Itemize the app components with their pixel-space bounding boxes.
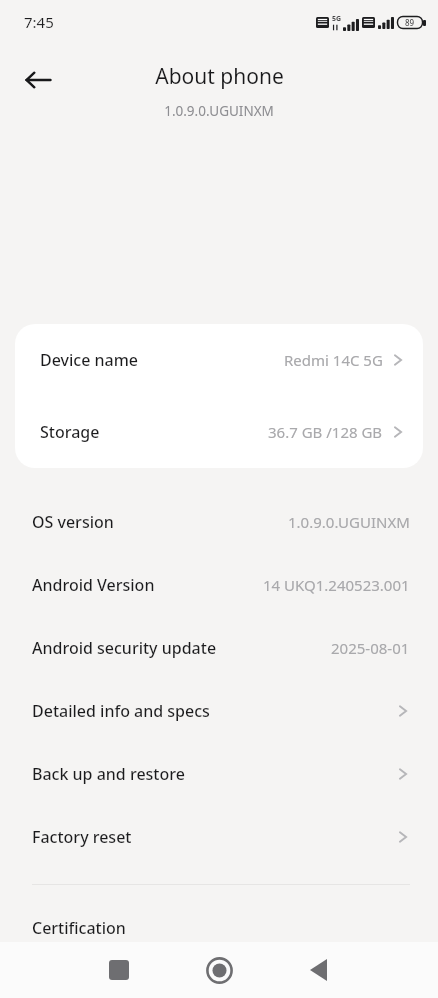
staticText: 1.0.9.0.UGUINXM (288, 512, 410, 532)
button[interactable]: Back (14, 56, 62, 104)
staticText: Storage (40, 421, 100, 443)
staticText: About phone (155, 62, 284, 91)
staticText: 36.7 GB /128 GB (268, 422, 383, 442)
staticText: Android Version (32, 574, 155, 596)
staticText: OS version (32, 511, 114, 533)
button[interactable]: Back (294, 946, 342, 994)
staticText: 89 (405, 17, 415, 28)
staticText: 2025-08-01 (331, 638, 410, 658)
staticText: 5G (332, 14, 342, 24)
staticText: 1.0.9.0.UGUINXM (164, 102, 274, 120)
staticText: Factory reset (32, 826, 132, 848)
button[interactable]: Factory reset (0, 805, 438, 868)
staticText: Android security update (32, 637, 217, 659)
button[interactable]: Device name (15, 324, 423, 396)
button[interactable]: Storage (15, 396, 423, 468)
staticText: Redmi 14C 5G (284, 350, 383, 370)
button[interactable]: Android security update (0, 616, 438, 679)
staticText: Certification (32, 917, 126, 939)
staticText: Back up and restore (32, 763, 185, 785)
button[interactable]: Back up and restore (0, 742, 438, 805)
staticText: Device name (40, 349, 139, 371)
staticText: 14 UKQ1.240523.001 (263, 575, 410, 595)
button[interactable]: OS version (0, 490, 438, 553)
staticText: Detailed info and specs (32, 700, 210, 722)
button[interactable]: Detailed info and specs (0, 679, 438, 742)
button[interactable]: Recent apps (95, 946, 143, 994)
button[interactable]: Home (195, 946, 243, 994)
staticText: 7:45 (24, 12, 54, 32)
button[interactable]: Android Version (0, 553, 438, 616)
